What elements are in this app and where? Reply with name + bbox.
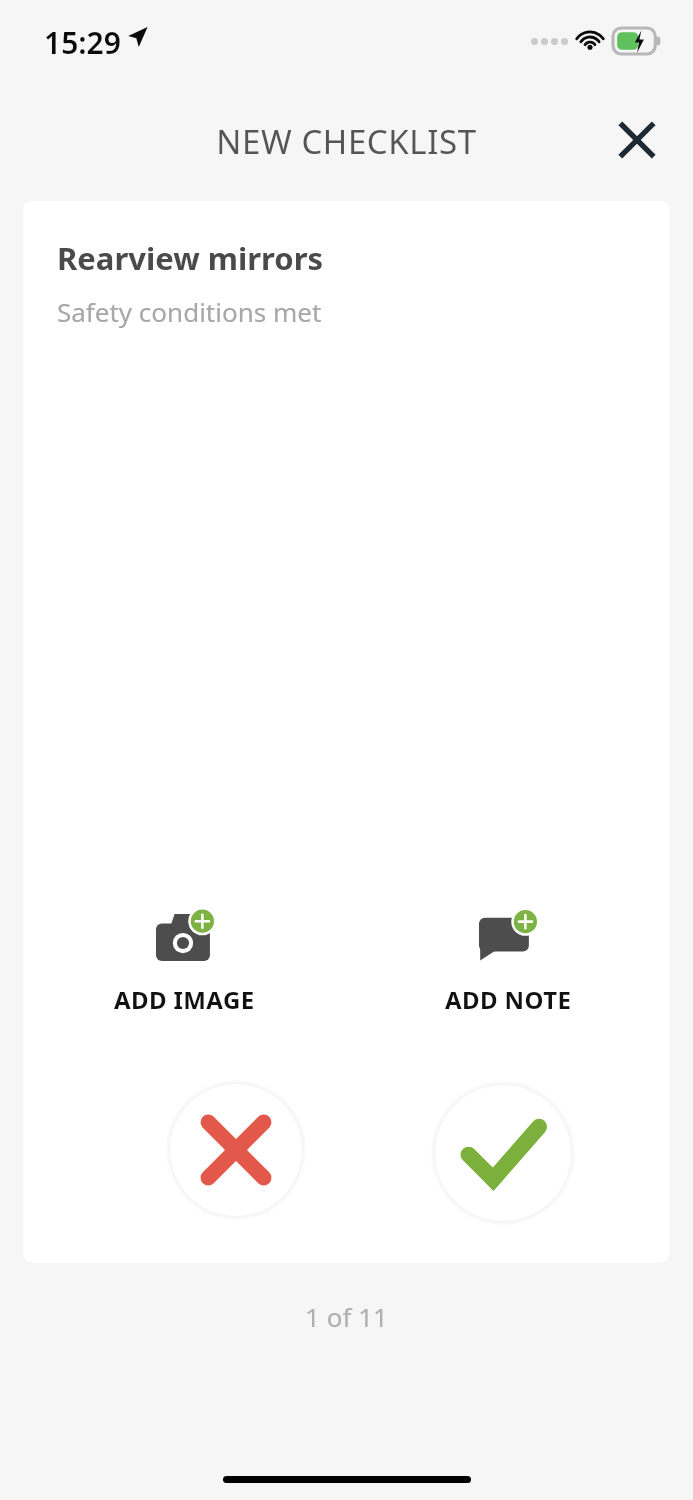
staticText: 1 of 11 [0,1299,693,1334]
button[interactable]: Fail [148,1062,324,1238]
button[interactable]: Close [601,104,673,176]
button[interactable]: Pass [415,1065,591,1241]
staticText: ADD IMAGE [114,983,255,1016]
staticText: Safety conditions met [57,294,322,329]
button[interactable]: ADD IMAGE [23,907,346,1022]
staticText: ADD NOTE [445,983,572,1016]
staticText: Rearview mirrors [57,237,324,279]
staticText: NEW CHECKLIST [0,119,693,164]
button[interactable]: ADD NOTE [346,907,670,1022]
staticText: 15:29 [44,22,121,63]
